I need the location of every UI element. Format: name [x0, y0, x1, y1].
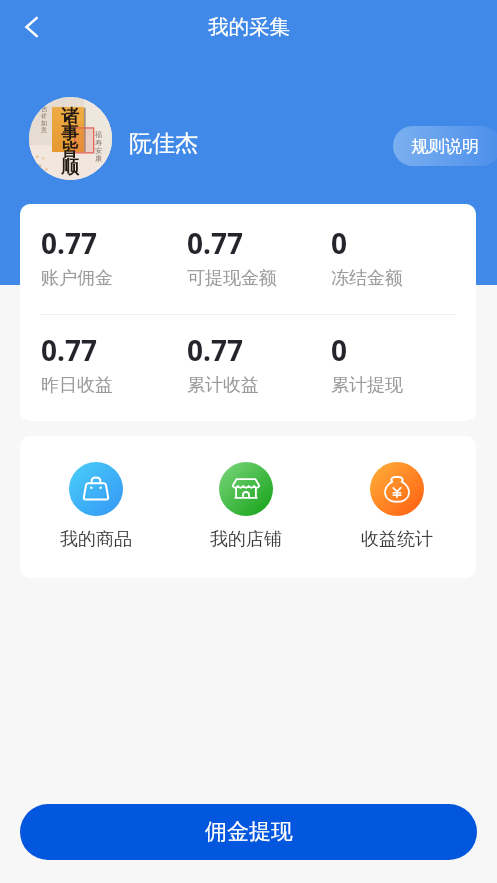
staticText: 佣金提现 [205, 818, 293, 846]
button[interactable]: 0.77 [187, 331, 259, 397]
staticText: 0.77 [187, 224, 243, 262]
staticText: 账户佣金 [41, 267, 113, 290]
button[interactable]: 规则说明 [393, 126, 497, 166]
staticText: 可提现金额 [187, 267, 277, 290]
button[interactable]: 佣金提现 [20, 804, 477, 860]
button[interactable]: Back [10, 5, 54, 49]
staticText: 规则说明 [411, 136, 479, 157]
staticText: 0.77 [187, 331, 243, 369]
staticText: 0 [331, 224, 348, 262]
button[interactable]: 0.77 [41, 224, 113, 290]
staticText: 累计提现 [331, 374, 403, 397]
staticText: 冻结金额 [331, 267, 403, 290]
button[interactable]: 0 [331, 224, 403, 290]
staticText: 0.77 [41, 224, 97, 262]
staticText: 我的店铺 [210, 528, 282, 551]
staticText: 吉 祥 如 意 [41, 105, 47, 134]
staticText: 累计收益 [187, 374, 259, 397]
staticText: 诸 事 皆 顺 [61, 105, 79, 179]
staticText: 我的采集 [208, 14, 290, 40]
button[interactable]: Profile photo [29, 97, 112, 180]
staticText: 0 [331, 331, 348, 369]
button[interactable]: 我的店铺 [199, 462, 293, 551]
button[interactable]: 0 [331, 331, 403, 397]
button[interactable]: 收益统计 [350, 462, 444, 551]
button[interactable]: 0.77 [41, 331, 113, 397]
staticText: 昨日收益 [41, 374, 113, 397]
staticText: 收益统计 [361, 528, 433, 551]
button[interactable]: 我的商品 [49, 462, 143, 551]
staticText: 阮佳杰 [129, 129, 198, 158]
staticText: 福 寿 安 康 [95, 130, 102, 163]
button[interactable]: 0.77 [187, 224, 277, 290]
staticText: 0.77 [41, 331, 97, 369]
staticText: 我的商品 [60, 528, 132, 551]
